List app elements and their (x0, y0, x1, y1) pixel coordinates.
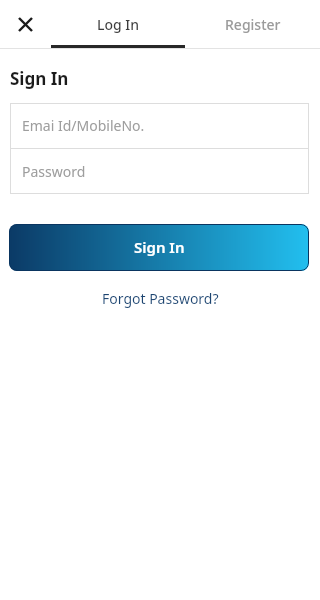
button[interactable]: Password (10, 149, 309, 194)
staticText: Emai Id/MobileNo. (22, 116, 145, 135)
staticText: Log In (97, 15, 140, 34)
staticText: Register (225, 15, 281, 34)
button[interactable]: Forgot Password? (102, 289, 219, 308)
staticText: Sign In (10, 67, 69, 90)
button[interactable]: Emai Id/MobileNo. (10, 103, 309, 148)
button[interactable]: Sign In (9, 224, 309, 271)
button[interactable]: Log In (51, 0, 185, 48)
button[interactable] (0, 0, 51, 48)
staticText: Password (22, 162, 86, 181)
button[interactable]: Register (185, 0, 320, 48)
staticText: Sign In (134, 237, 185, 257)
